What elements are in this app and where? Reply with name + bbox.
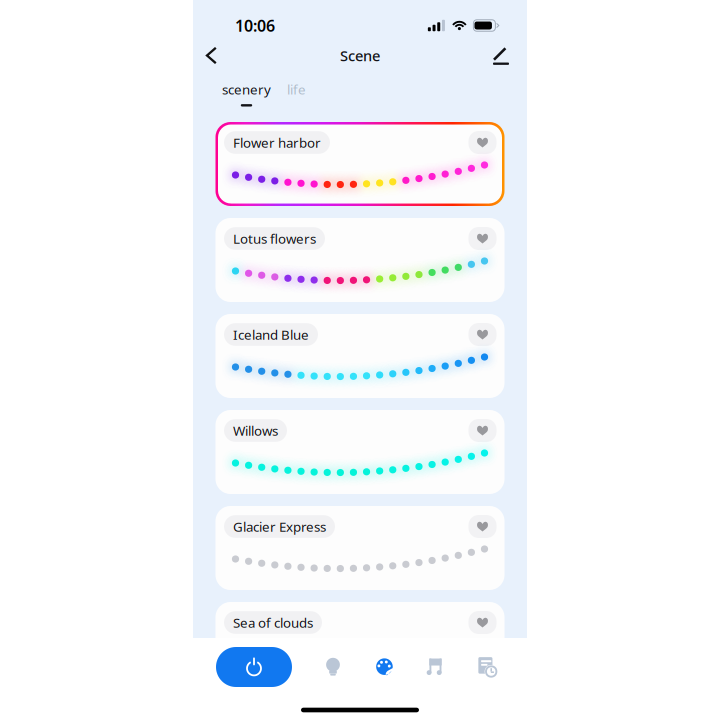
staticText: life [287,80,306,98]
staticText: Lotus flowers [233,230,316,247]
staticText: 10:06 [235,15,275,36]
button[interactable]: Glacier Express [215,506,504,590]
staticText: Flower harbor [233,134,321,151]
staticText: Sea of clouds [233,614,313,631]
button[interactable]: Back [198,43,225,68]
staticText: Scene [340,46,380,65]
button[interactable]: life [287,80,306,106]
button[interactable]: Iceland Blue [215,314,504,398]
button[interactable]: Power [216,645,292,689]
staticText: scenery [222,80,271,98]
button[interactable]: scenery [222,80,271,106]
button[interactable]: Flower harbor [215,122,504,206]
button[interactable]: Brightness [314,647,352,687]
button[interactable]: Willows [215,410,504,494]
button[interactable]: Scenes [365,647,403,687]
staticText: Iceland Blue [233,326,309,343]
staticText: Glacier Express [233,518,326,535]
button[interactable]: Music [416,647,454,687]
staticText: Willows [233,422,278,439]
button[interactable]: Edit [486,42,516,69]
button[interactable]: Schedule [468,647,506,687]
button[interactable]: Lotus flowers [215,218,504,302]
button[interactable]: Sea of clouds [215,602,504,686]
